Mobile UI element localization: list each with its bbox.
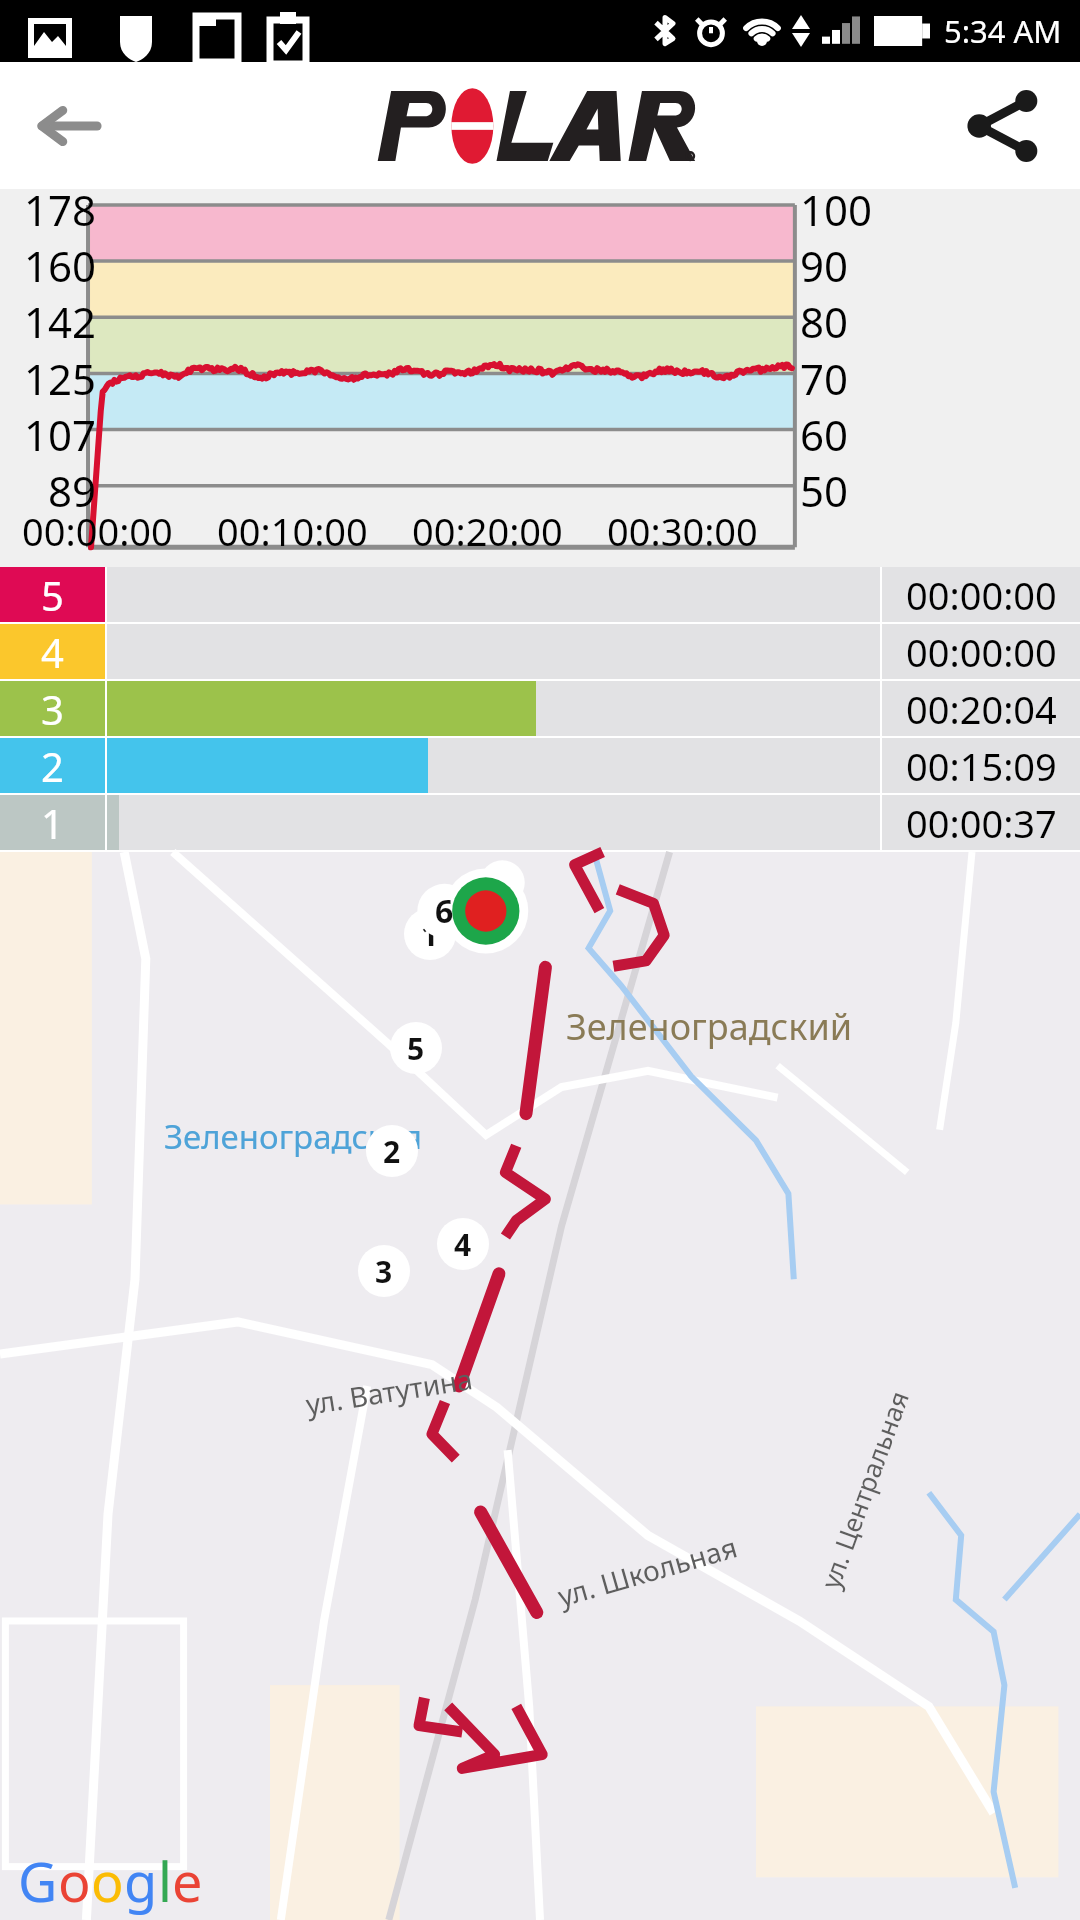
staticText: 107 [18,406,96,463]
button[interactable]: 2 [0,738,1080,793]
staticText: 00:00:00 [906,626,1057,678]
button[interactable]: 5 [0,567,1080,622]
staticText: ул. Ватутина [303,1359,476,1423]
staticText: G [18,1844,58,1918]
staticText: 125 [18,350,96,407]
staticText: 4 [41,625,64,679]
button[interactable]: Share [964,88,1040,164]
staticText: 60 [800,406,920,463]
staticText: 5 [407,1028,425,1069]
staticText: 00:20:04 [906,683,1057,735]
staticText: o [91,1844,124,1918]
staticText: ул. Центральная [812,1386,916,1593]
staticText: Зеленоградский [566,1002,853,1051]
staticText: e [172,1844,203,1918]
button[interactable]: 4 [437,1218,489,1270]
staticText: 90 [800,237,920,294]
staticText: 89 [18,462,96,519]
button[interactable]: 3 [358,1245,410,1297]
button[interactable]: 4 [0,624,1080,679]
staticText: 1 [421,914,439,955]
staticText: 178 [18,181,96,238]
staticText: ул. Школьная [553,1527,742,1615]
button[interactable]: Back [30,87,108,165]
staticText: 00:20:00 [412,505,607,557]
staticText: 00:00:00 [22,505,217,557]
staticText: 80 [800,293,920,350]
staticText: 00:15:09 [906,740,1057,792]
staticText: 70 [800,350,920,407]
staticText: Зеленоградская [164,1114,423,1159]
staticText: 00:30:00 [607,505,802,557]
button[interactable]: Start point [415,852,533,970]
staticText: 160 [18,237,96,294]
staticText: o [58,1844,91,1918]
staticText: 4 [454,1224,472,1265]
staticText: 6 [435,889,454,933]
button[interactable]: 1 [404,908,456,960]
staticText: 100 [800,181,920,238]
staticText: 2 [41,739,64,793]
button[interactable]: 5 [390,1022,442,1074]
staticText: l [158,1844,172,1918]
staticText: g [124,1844,158,1918]
button[interactable]: 3 [0,681,1080,736]
staticText: 00:00:37 [906,797,1057,849]
staticText: 3 [41,682,64,736]
staticText: 1 [41,796,64,850]
staticText: 50 [800,462,920,519]
staticText: 00:00:00 [906,569,1057,621]
staticText: 5 [41,568,64,622]
staticText: 2 [383,1131,401,1172]
staticText: 5:34 AM [944,10,1062,52]
staticText: 3 [375,1251,393,1292]
button[interactable]: 1 [0,795,1080,850]
button[interactable]: 2 [366,1125,418,1177]
staticText: 142 [18,293,96,350]
staticText: 00:10:00 [217,505,412,557]
